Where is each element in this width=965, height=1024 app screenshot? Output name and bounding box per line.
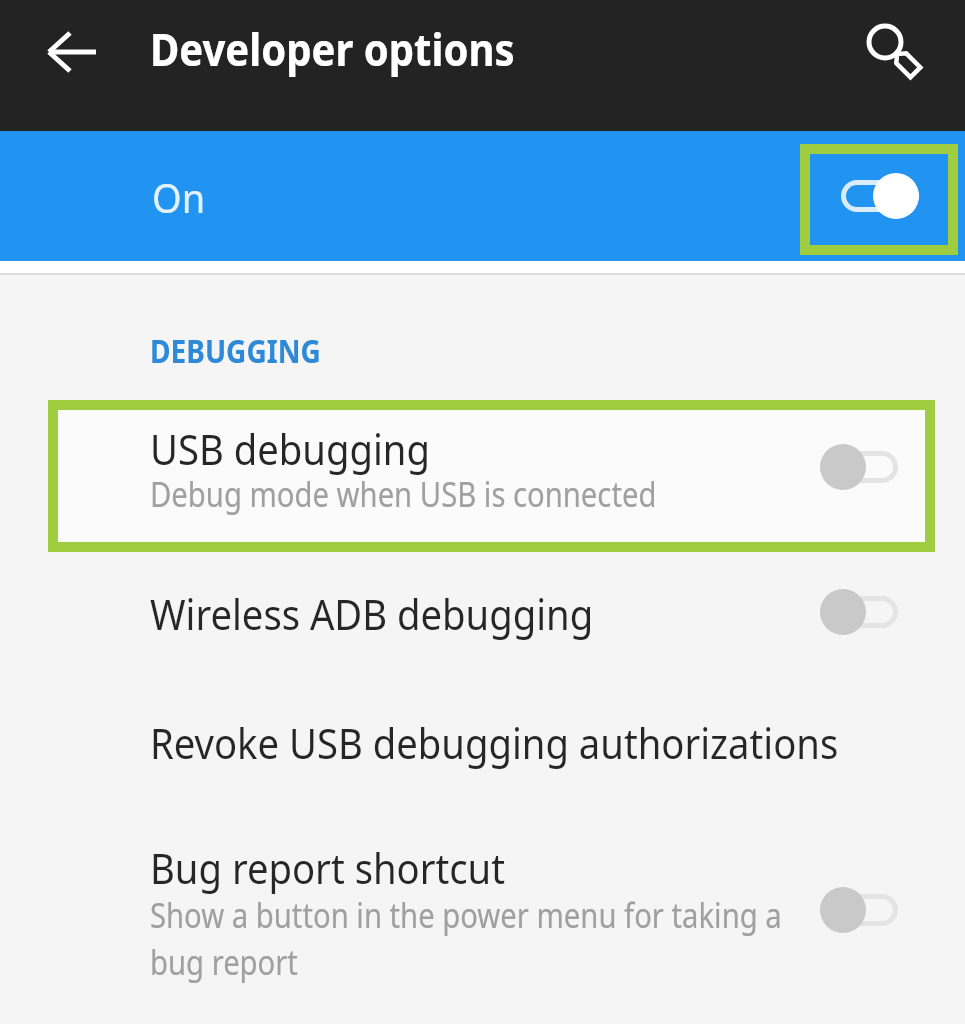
staticText: Bug report shortcut — [150, 839, 506, 896]
staticText: DEBUGGING — [150, 328, 321, 373]
staticText: Show a button in the power menu for taki… — [150, 892, 782, 938]
button[interactable] — [820, 887, 898, 933]
button[interactable] — [841, 173, 919, 219]
button[interactable] — [0, 830, 965, 1000]
staticText: USB debugging — [150, 420, 430, 477]
staticText: Debug mode when USB is connected — [150, 471, 656, 517]
button[interactable] — [40, 24, 104, 80]
button[interactable] — [0, 700, 965, 788]
button[interactable] — [0, 131, 965, 261]
staticText: Wireless ADB debugging — [150, 585, 594, 642]
button[interactable] — [820, 589, 898, 635]
button[interactable] — [820, 444, 898, 490]
button[interactable] — [48, 400, 935, 552]
staticText: On — [152, 170, 205, 224]
button[interactable] — [0, 570, 965, 658]
staticText: Developer options — [150, 18, 515, 79]
button[interactable] — [860, 17, 930, 87]
staticText: bug report — [150, 939, 299, 985]
staticText: Revoke USB debugging authorizations — [150, 714, 839, 771]
